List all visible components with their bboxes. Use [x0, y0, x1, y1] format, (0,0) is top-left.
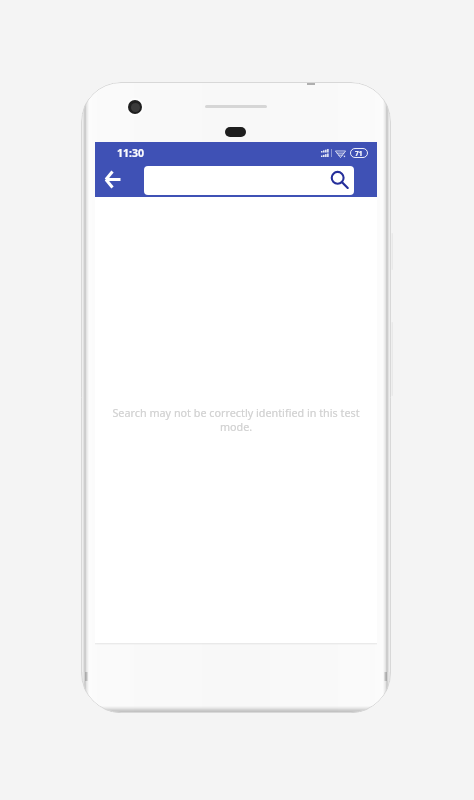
- button[interactable]: [144, 166, 354, 195]
- staticText: Search may not be correctly identified i…: [107, 405, 365, 434]
- staticText: 11:30: [117, 146, 144, 160]
- button[interactable]: Back: [95, 164, 132, 197]
- staticText: 71: [355, 149, 363, 158]
